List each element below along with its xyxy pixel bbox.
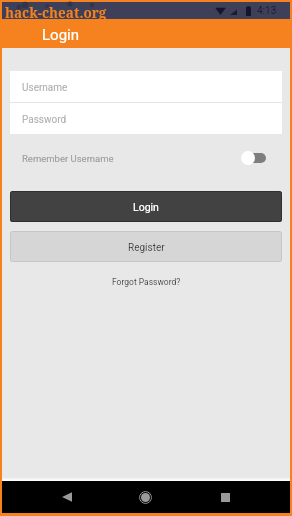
staticText: Register [128,242,165,254]
button[interactable]: Login [10,191,282,222]
staticText: Password [22,114,67,126]
staticText: Login [42,26,79,44]
button[interactable]: Register [10,231,282,262]
button[interactable]: Home [106,481,185,513]
staticText: 4:13 [257,5,277,17]
button[interactable]: Forgot Password? [106,275,187,289]
staticText: Username [22,82,68,94]
staticText: hack-cheat.org [5,4,107,22]
button[interactable]: Password [10,103,282,134]
staticText: Login [133,201,159,213]
button[interactable]: Remember Username [2,143,290,173]
button[interactable]: Username [10,71,282,102]
button[interactable]: Recent apps [185,481,266,513]
button[interactable]: Back [27,481,106,513]
staticText: Remember Username [22,153,114,164]
